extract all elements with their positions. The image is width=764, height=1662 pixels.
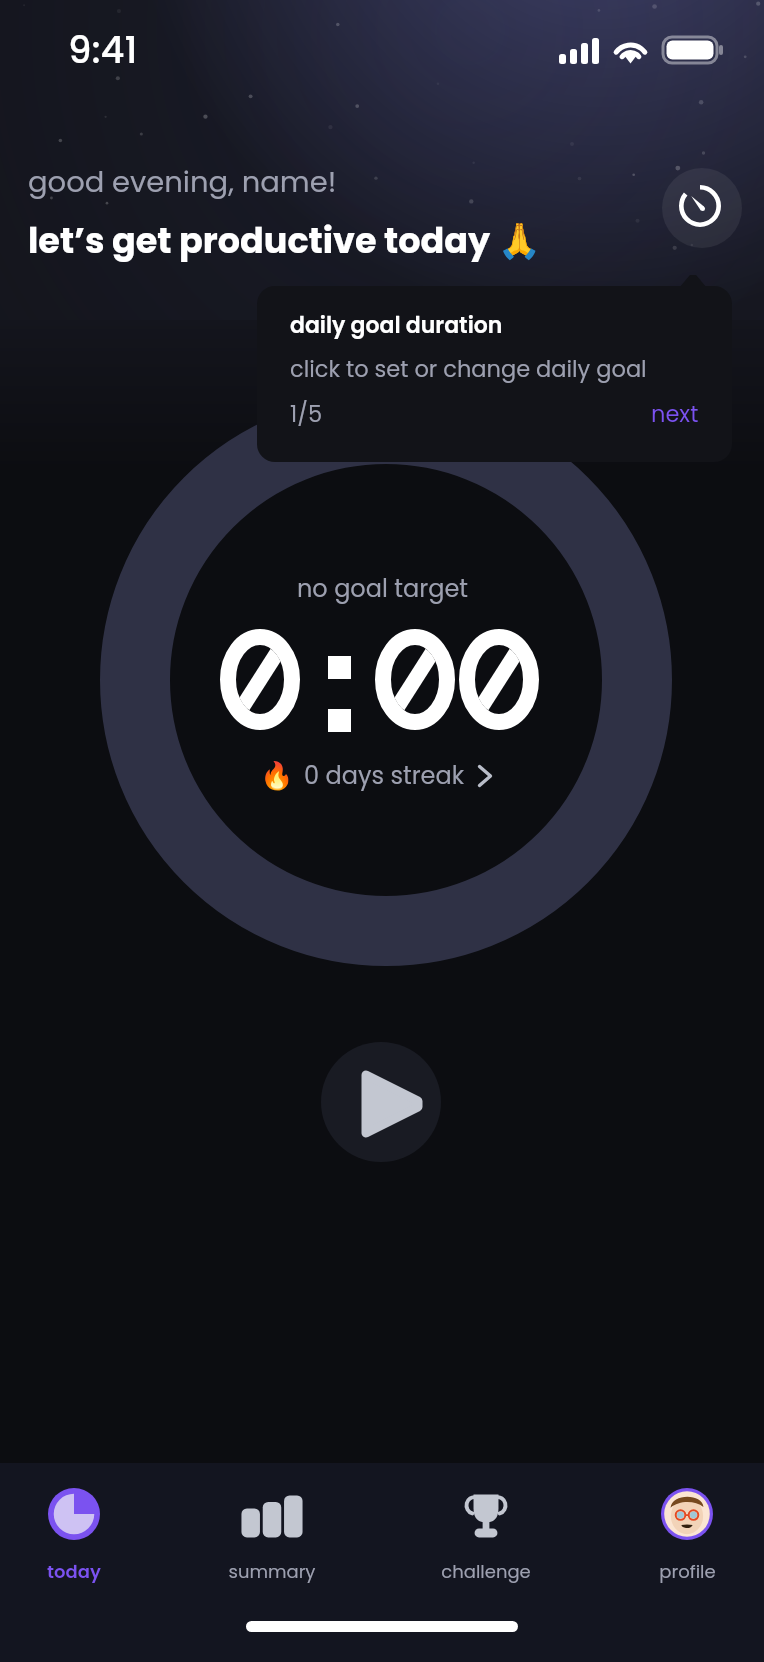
- button[interactable]: Start timer: [321, 1042, 441, 1162]
- button[interactable]: today: [14, 1488, 134, 1584]
- staticText: 0 days streak: [304, 759, 465, 793]
- staticText: summary: [228, 1559, 316, 1584]
- staticText: good evening, name!: [28, 162, 337, 203]
- button[interactable]: challenge: [426, 1488, 546, 1584]
- button[interactable]: Set daily goal duration: [662, 168, 742, 248]
- button[interactable]: 🔥: [254, 755, 499, 797]
- staticText: no goal target: [297, 572, 468, 606]
- staticText: let’s get productive today 🙏: [28, 216, 542, 265]
- staticText: 9:41: [68, 24, 138, 76]
- staticText: 🔥: [260, 760, 294, 792]
- button[interactable]: summary: [212, 1488, 332, 1584]
- staticText: challenge: [441, 1559, 531, 1584]
- staticText: today: [47, 1559, 101, 1584]
- staticText: click to set or change daily goal: [290, 353, 647, 384]
- staticText: profile: [659, 1559, 716, 1584]
- button[interactable]: profile: [627, 1488, 747, 1584]
- button[interactable]: next: [651, 398, 699, 429]
- staticText: 1/5: [290, 398, 323, 429]
- staticText: daily goal duration: [290, 310, 503, 341]
